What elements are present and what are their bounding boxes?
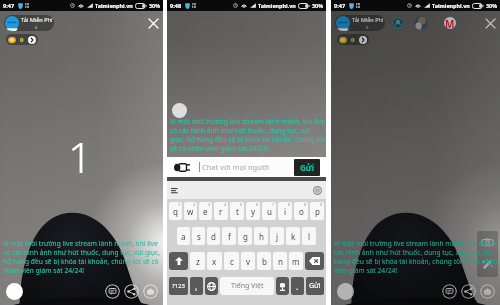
button[interactable]: Beautify — [480, 257, 495, 272]
staticText: 9 — [304, 202, 307, 207]
button[interactable]: 0 — [6, 34, 38, 45]
staticText: q — [173, 206, 178, 217]
button[interactable]: Close — [145, 15, 161, 31]
staticText: f — [228, 231, 231, 242]
staticText: Gửi — [300, 162, 315, 173]
button[interactable]: Tải Miễn Phí — [4, 15, 54, 31]
button[interactable]: Settings — [313, 186, 322, 195]
staticText: v — [246, 256, 251, 267]
staticText: Taimienphi.vn — [258, 2, 296, 9]
button[interactable]: j — [270, 227, 284, 245]
staticText: d — [211, 231, 216, 242]
staticText: 30% — [312, 2, 324, 9]
button[interactable]: Language — [205, 277, 218, 295]
staticText: 3 — [208, 202, 211, 207]
staticText: w — [187, 206, 194, 217]
button[interactable]: f — [222, 227, 236, 245]
button[interactable]: d — [207, 227, 220, 245]
button[interactable]: Gửi — [294, 159, 320, 176]
button[interactable]: Gift — [171, 158, 193, 176]
button[interactable]: t — [230, 202, 244, 220]
staticText: s — [197, 231, 201, 242]
button[interactable]: i — [278, 202, 292, 220]
staticText: Vì một môi trường live stream lành mạnh,… — [170, 117, 325, 153]
button[interactable]: n — [273, 252, 287, 270]
staticText: a — [181, 231, 186, 242]
staticText: e — [203, 206, 208, 217]
button[interactable]: b — [257, 252, 271, 270]
button[interactable]: Shift — [169, 252, 188, 270]
button[interactable]: Tiếng Việt — [220, 277, 274, 295]
button[interactable]: w — [184, 202, 197, 220]
button[interactable]: Chat với mọi người — [196, 159, 291, 175]
button[interactable]: Viewer 1 — [392, 17, 404, 29]
button[interactable]: c — [224, 252, 239, 270]
button[interactable]: Voice — [276, 277, 289, 295]
staticText: 0 — [366, 25, 369, 31]
button[interactable]: z — [190, 252, 205, 270]
staticText: t — [236, 206, 239, 217]
button[interactable]: r — [214, 202, 228, 220]
staticText: m — [292, 256, 300, 267]
button[interactable]: Tải Miễn Phí — [335, 15, 385, 31]
staticText: 0 — [20, 36, 24, 44]
button[interactable]: a — [177, 227, 190, 245]
staticText: p — [315, 206, 320, 217]
button[interactable]: Gift — [480, 284, 495, 299]
button[interactable]: Share — [461, 284, 476, 299]
staticText: 9:47 — [334, 2, 346, 10]
staticText: x — [212, 256, 217, 267]
staticText: Gửi — [309, 281, 321, 291]
button[interactable]: e — [199, 202, 212, 220]
button[interactable]: h — [254, 227, 268, 245]
staticText: 4 — [224, 202, 227, 207]
button[interactable]: 0 — [337, 34, 369, 45]
button[interactable]: M — [444, 17, 456, 29]
staticText: 6 — [256, 202, 259, 207]
button[interactable]: Backspace — [305, 252, 324, 270]
staticText: 7 — [272, 202, 275, 207]
button[interactable]: s — [192, 227, 205, 245]
staticText: 30% — [486, 2, 498, 9]
button[interactable]: m — [289, 252, 303, 270]
staticText: 0 — [351, 36, 355, 44]
button[interactable]: u — [262, 202, 276, 220]
staticText: 9:47 — [3, 2, 15, 10]
button[interactable]: . — [291, 277, 304, 295]
staticText: h — [259, 231, 264, 242]
button[interactable]: x — [207, 252, 222, 270]
button[interactable]: k — [286, 227, 300, 245]
button[interactable]: Chat — [105, 284, 120, 299]
button[interactable]: Menu — [171, 187, 178, 194]
staticText: r — [219, 206, 223, 217]
staticText: 9:48 — [170, 2, 182, 10]
button[interactable]: Switch camera — [480, 235, 495, 250]
button[interactable]: Record — [337, 283, 354, 300]
button[interactable]: , — [190, 277, 203, 295]
staticText: 0 — [35, 25, 38, 31]
staticText: Taimienphi.vn — [432, 2, 470, 9]
staticText: j — [276, 231, 279, 242]
staticText: n — [278, 256, 283, 267]
button[interactable]: Share — [124, 284, 139, 299]
button[interactable]: Close — [482, 15, 498, 31]
staticText: Vì một môi trường live stream lành mạnh,… — [334, 239, 499, 275]
staticText: o — [299, 206, 304, 217]
button[interactable]: Gửi — [306, 277, 324, 295]
button[interactable]: Viewer 2 — [414, 16, 428, 30]
button[interactable]: l — [302, 227, 316, 245]
button[interactable]: ?123 — [169, 277, 188, 295]
button[interactable]: o — [294, 202, 308, 220]
button[interactable]: p — [310, 202, 324, 220]
staticText: 5 — [240, 202, 243, 207]
button[interactable]: Gift — [143, 284, 158, 299]
button[interactable]: Chat — [442, 284, 457, 299]
button[interactable]: g — [238, 227, 252, 245]
button[interactable]: y — [246, 202, 260, 220]
staticText: ?123 — [172, 282, 185, 290]
button[interactable]: v — [241, 252, 255, 270]
staticText: y — [251, 206, 256, 217]
button[interactable]: q — [169, 202, 182, 220]
button[interactable]: Record — [6, 283, 23, 300]
staticText: Tải Miễn Phí — [352, 16, 384, 24]
